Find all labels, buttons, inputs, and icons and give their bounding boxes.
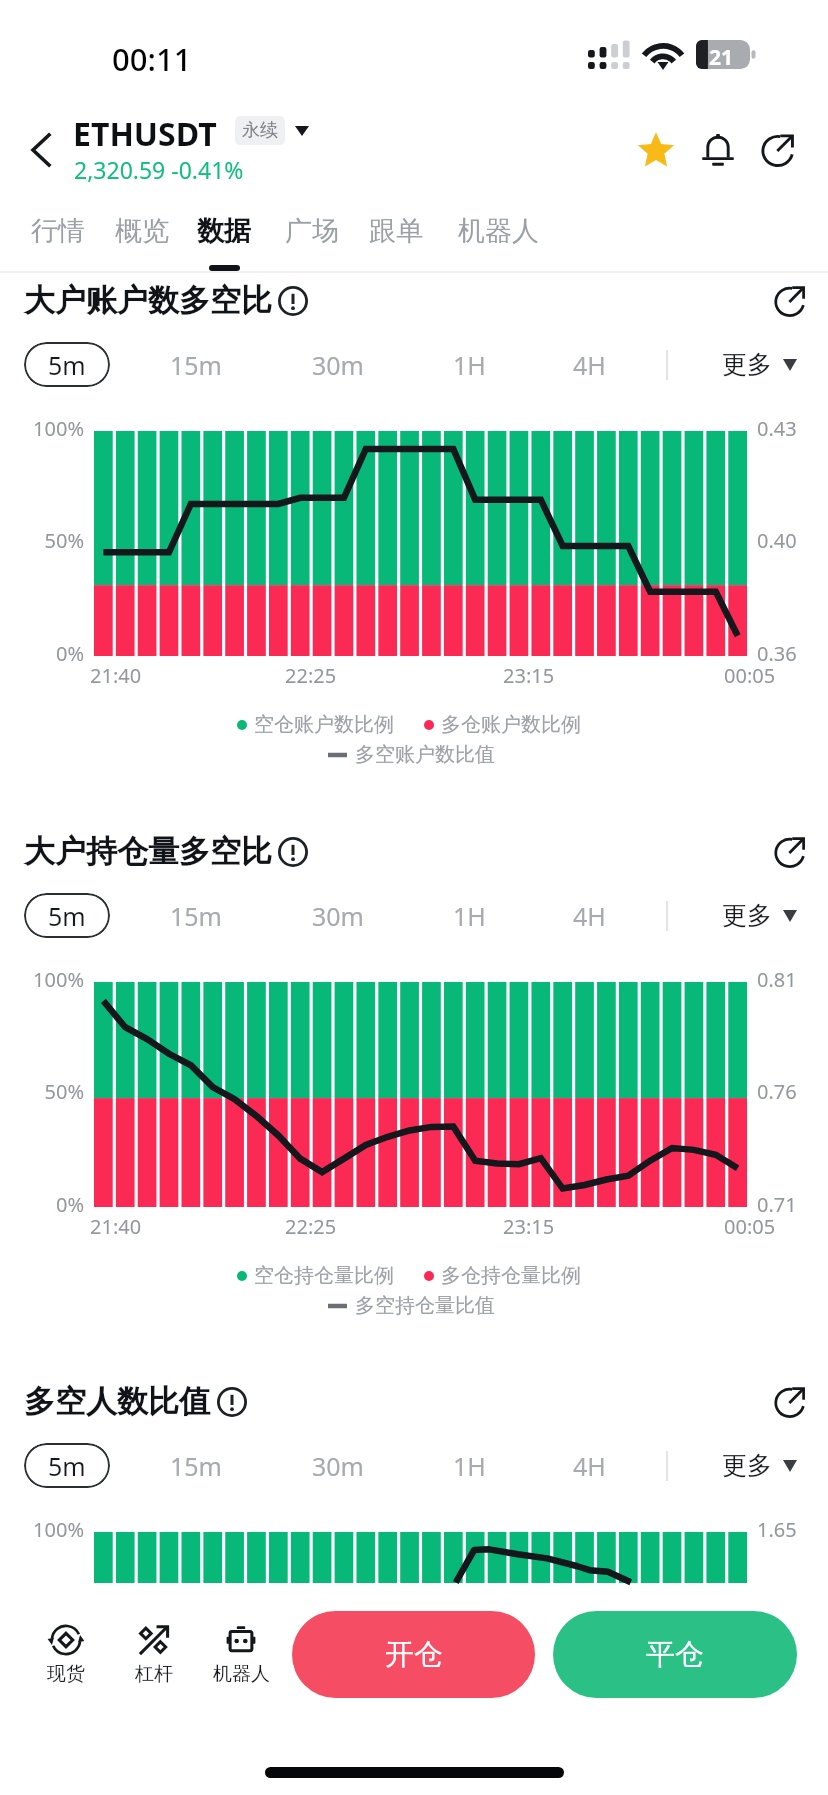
staticText: 30m	[312, 348, 364, 382]
button[interactable]: 15m	[156, 1443, 236, 1488]
button[interactable]: Alerts	[690, 122, 746, 178]
button[interactable]: Back	[12, 122, 72, 182]
button[interactable]: 数据	[186, 206, 262, 268]
staticText: ETHUSDT	[73, 112, 217, 156]
staticText: 永续	[242, 119, 278, 142]
staticText: 00:11	[112, 38, 192, 80]
button[interactable]: 更多	[714, 893, 806, 938]
staticText: 5m	[48, 1449, 86, 1483]
button[interactable]: Open detail	[762, 273, 818, 329]
staticText: 15m	[170, 899, 222, 933]
button[interactable]: 1H	[429, 342, 509, 387]
button[interactable]: 现货	[21, 1614, 111, 1692]
staticText: 大户账户数多空比	[24, 281, 272, 320]
button[interactable]: 30m	[298, 342, 378, 387]
staticText: 4H	[573, 348, 606, 382]
button[interactable]: 更多	[714, 342, 806, 387]
button[interactable]: 1H	[429, 893, 509, 938]
staticText: 空仓持仓量比例	[254, 1263, 394, 1288]
staticText: 杠杆	[135, 1662, 173, 1686]
staticText: 概览	[115, 214, 169, 248]
staticText: 22:25	[285, 662, 337, 689]
staticText: 平仓	[646, 1636, 704, 1673]
staticText: 4H	[573, 1449, 606, 1483]
button[interactable]: 机器人	[196, 1614, 286, 1692]
staticText: 4H	[573, 899, 606, 933]
button[interactable]: 行情	[20, 206, 96, 268]
button[interactable]: 概览	[104, 206, 180, 268]
staticText: 100%	[0, 1516, 84, 1543]
staticText: 广场	[285, 214, 339, 248]
button[interactable]: 5m	[24, 1443, 110, 1488]
button[interactable]: 跟单	[358, 206, 434, 268]
staticText: 跟单	[369, 214, 423, 248]
button[interactable]: 30m	[298, 1443, 378, 1488]
staticText: 5m	[48, 899, 86, 933]
button[interactable]: 4H	[549, 342, 629, 387]
button[interactable]: 5m	[24, 893, 110, 938]
staticText: 00:05	[724, 662, 776, 689]
button[interactable]: 1H	[429, 1443, 509, 1488]
staticText: 更多	[722, 1450, 772, 1481]
staticText: 大户持仓量多空比	[24, 832, 272, 871]
staticText: 30m	[312, 899, 364, 933]
button[interactable]: 30m	[298, 893, 378, 938]
staticText: 50%	[0, 1078, 84, 1105]
staticText: 数据	[197, 214, 251, 248]
button[interactable]: 4H	[549, 1443, 629, 1488]
button[interactable]: 5m	[24, 342, 110, 387]
button[interactable]: 杠杆	[109, 1614, 199, 1692]
staticText: 00:05	[724, 1213, 776, 1240]
staticText: 23:15	[503, 662, 555, 689]
staticText: 开仓	[385, 1636, 443, 1673]
staticText: 更多	[722, 349, 772, 380]
staticText: 22:25	[285, 1213, 337, 1240]
staticText: 50%	[0, 527, 84, 554]
staticText: 0.40	[757, 527, 797, 554]
staticText: 机器人	[458, 214, 539, 248]
staticText: 5m	[48, 348, 86, 382]
button[interactable]: 平仓	[553, 1611, 797, 1698]
staticText: 15m	[170, 1449, 222, 1483]
staticText: 0.76	[757, 1078, 797, 1105]
button[interactable]: 机器人	[446, 206, 550, 268]
staticText: 多仓持仓量比例	[441, 1263, 581, 1288]
staticText: 多空持仓量比值	[355, 1293, 495, 1318]
staticText: 更多	[722, 900, 772, 931]
button[interactable]: Favorite	[628, 122, 684, 178]
staticText: 现货	[47, 1662, 85, 1686]
staticText: 行情	[31, 214, 85, 248]
staticText: 0%	[0, 640, 84, 667]
staticText: 100%	[0, 415, 84, 442]
button[interactable]: 4H	[549, 893, 629, 938]
staticText: 0.81	[757, 966, 797, 993]
staticText: 2,320.59 -0.41%	[74, 154, 244, 185]
staticText: 0.71	[757, 1191, 797, 1218]
staticText: 1.65	[757, 1516, 797, 1543]
staticText: 机器人	[213, 1662, 270, 1686]
staticText: 多仓账户数比例	[441, 712, 581, 737]
button[interactable]: 广场	[274, 206, 350, 268]
staticText: 多空人数比值	[24, 1382, 210, 1421]
button[interactable]: Open detail	[762, 1374, 818, 1430]
staticText: 1H	[453, 899, 486, 933]
staticText: 21:40	[90, 662, 142, 689]
staticText: 0.36	[757, 640, 797, 667]
staticText: 21:40	[90, 1213, 142, 1240]
button[interactable]: Share	[750, 122, 806, 178]
staticText: 23:15	[503, 1213, 555, 1240]
staticText: 空仓账户数比例	[254, 712, 394, 737]
button[interactable]: 更多	[714, 1443, 806, 1488]
staticText: 多空账户数比值	[355, 742, 495, 767]
button[interactable]: 15m	[156, 342, 236, 387]
staticText: 100%	[0, 966, 84, 993]
staticText: 30m	[312, 1449, 364, 1483]
button[interactable]: 15m	[156, 893, 236, 938]
staticText: 1H	[453, 348, 486, 382]
staticText: 21	[709, 43, 734, 72]
button[interactable]: Open detail	[762, 824, 818, 880]
staticText: 1H	[453, 1449, 486, 1483]
staticText: 15m	[170, 348, 222, 382]
button[interactable]: 开仓	[292, 1611, 535, 1698]
staticText: 0%	[0, 1191, 84, 1218]
